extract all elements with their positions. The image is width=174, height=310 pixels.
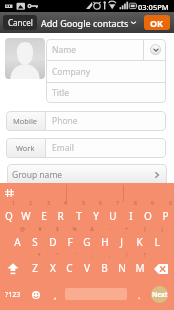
staticText: N bbox=[118, 261, 126, 275]
button[interactable]: 6 bbox=[87, 201, 104, 224]
staticText: T bbox=[76, 209, 82, 223]
button[interactable]: & bbox=[78, 227, 95, 250]
staticText: R bbox=[57, 209, 64, 223]
staticText: I bbox=[129, 209, 133, 223]
button[interactable]: OK bbox=[144, 15, 170, 30]
button[interactable]: ' bbox=[61, 253, 78, 276]
button[interactable]: 0 bbox=[157, 201, 174, 224]
staticText: 03:05PM bbox=[138, 2, 169, 12]
staticText: : bbox=[91, 252, 93, 259]
staticText: Cancel bbox=[8, 17, 33, 28]
staticText: Email bbox=[52, 142, 74, 154]
staticText: E bbox=[41, 209, 47, 223]
button[interactable]: Group name bbox=[7, 164, 167, 185]
button[interactable]: Cancel bbox=[3, 15, 37, 30]
staticText: Group name bbox=[12, 169, 63, 181]
staticText: - bbox=[109, 226, 111, 233]
button[interactable]: % bbox=[61, 227, 78, 250]
button[interactable]: Title bbox=[46, 83, 166, 103]
staticText: , bbox=[54, 289, 57, 301]
staticText: " bbox=[56, 252, 59, 259]
staticText: 4 bbox=[64, 200, 67, 207]
staticText: ? bbox=[143, 252, 146, 259]
staticText: Z bbox=[32, 261, 38, 275]
staticText: F bbox=[67, 235, 73, 249]
staticText: # bbox=[38, 226, 42, 233]
staticText: ' bbox=[74, 252, 76, 259]
button[interactable]: 8 bbox=[122, 201, 139, 224]
button[interactable]: ? bbox=[131, 253, 148, 276]
staticText: ! bbox=[126, 252, 128, 259]
button[interactable]: @ bbox=[9, 227, 26, 250]
staticText: . bbox=[138, 289, 141, 301]
staticText: 0 bbox=[169, 200, 172, 207]
staticText: 7 bbox=[116, 200, 119, 207]
button[interactable]: Expand name fields bbox=[144, 39, 166, 60]
staticText: K bbox=[136, 235, 143, 249]
staticText: Phone bbox=[52, 115, 78, 127]
staticText: Next bbox=[152, 290, 168, 299]
staticText: ?123 bbox=[5, 290, 21, 300]
staticText: Name bbox=[52, 44, 76, 56]
button[interactable]: + bbox=[113, 227, 130, 250]
button[interactable]: ( bbox=[131, 227, 148, 250]
staticText: Q bbox=[5, 209, 13, 223]
staticText: 9 bbox=[151, 200, 154, 207]
staticText: & bbox=[90, 226, 94, 233]
button[interactable]: Phone bbox=[46, 111, 166, 131]
button[interactable]: ) bbox=[148, 227, 165, 250]
button[interactable]: : bbox=[78, 253, 95, 276]
staticText: * bbox=[38, 252, 41, 259]
staticText: ( bbox=[144, 226, 146, 233]
staticText: L bbox=[154, 235, 160, 249]
staticText: ) bbox=[161, 226, 163, 233]
button[interactable]: 2 bbox=[17, 201, 34, 224]
button[interactable]: , bbox=[45, 283, 65, 306]
staticText: OK bbox=[150, 17, 164, 29]
button[interactable]: 3 bbox=[35, 201, 52, 224]
staticText: % bbox=[72, 226, 77, 233]
button[interactable]: Emoji bbox=[26, 283, 45, 306]
button[interactable]: Name bbox=[46, 39, 143, 60]
staticText: 5 bbox=[82, 200, 85, 207]
button[interactable]: # bbox=[26, 227, 43, 250]
button[interactable]: . bbox=[129, 283, 149, 306]
button[interactable]: Backspace bbox=[148, 257, 174, 280]
button[interactable]: Company bbox=[46, 61, 166, 82]
staticText: P bbox=[162, 209, 169, 223]
staticText: Title bbox=[52, 87, 69, 99]
button[interactable]: * bbox=[26, 253, 43, 276]
staticText: V bbox=[84, 261, 90, 275]
button[interactable]: Shift bbox=[0, 257, 26, 280]
staticText: W bbox=[21, 209, 31, 223]
staticText: Company bbox=[52, 66, 91, 78]
staticText: D bbox=[49, 235, 57, 249]
staticText: Y bbox=[93, 209, 99, 223]
button[interactable]: ! bbox=[113, 253, 130, 276]
button[interactable]: Email bbox=[46, 138, 166, 158]
staticText: S bbox=[32, 235, 38, 249]
button[interactable]: Add Google contacts bbox=[41, 12, 136, 33]
button[interactable]: Add contact photo bbox=[5, 38, 45, 79]
button[interactable]: Mobile bbox=[6, 111, 45, 131]
button[interactable]: 9 bbox=[139, 201, 156, 224]
button[interactable]: Suggestion 2 bbox=[124, 183, 174, 203]
button[interactable]: - bbox=[96, 227, 113, 250]
button[interactable]: $ bbox=[44, 227, 61, 250]
staticText: @ bbox=[20, 226, 25, 233]
button[interactable]: 4 bbox=[52, 201, 69, 224]
button[interactable]: 5 bbox=[70, 201, 87, 224]
button[interactable]: ; bbox=[96, 253, 113, 276]
staticText: + bbox=[125, 226, 128, 233]
staticText: O bbox=[144, 209, 152, 223]
staticText: 2 bbox=[29, 200, 32, 207]
button[interactable]: Next bbox=[151, 286, 168, 303]
button[interactable]: Work bbox=[6, 138, 45, 158]
button[interactable]: Input method settings bbox=[0, 183, 20, 203]
button[interactable]: 7 bbox=[104, 201, 121, 224]
button[interactable]: ?123 bbox=[0, 283, 26, 306]
button[interactable]: " bbox=[44, 253, 61, 276]
button[interactable]: 1 bbox=[0, 201, 17, 224]
